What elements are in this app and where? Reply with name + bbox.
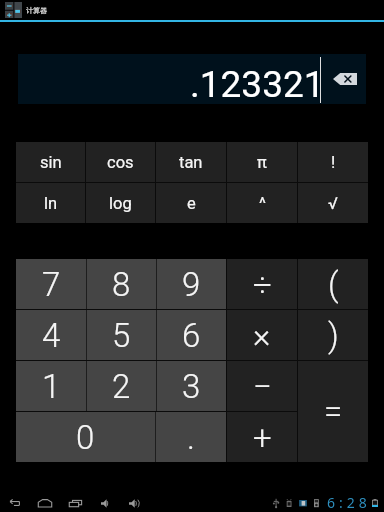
staticText: = — [324, 392, 343, 431]
staticText: √ — [328, 194, 338, 213]
button[interactable]: ^ — [227, 183, 297, 223]
staticText: 2 — [112, 367, 131, 406]
staticText: .123321 — [190, 63, 325, 106]
button[interactable]: − — [227, 361, 297, 411]
button[interactable]: log — [86, 183, 155, 223]
button[interactable]: 0 — [16, 412, 155, 462]
staticText: 1 — [42, 367, 61, 406]
staticText: ( — [328, 265, 339, 304]
button[interactable]: 1 — [16, 361, 86, 411]
staticText: ! — [331, 153, 336, 172]
button[interactable]: × — [227, 310, 297, 360]
button[interactable]: 5 — [87, 310, 156, 360]
staticText: log — [109, 194, 132, 213]
staticText: . — [187, 418, 195, 457]
button[interactable]: Back — [3, 496, 27, 510]
button[interactable]: 3 — [157, 361, 226, 411]
staticText: − — [253, 367, 272, 406]
staticText: ) — [328, 316, 339, 355]
button[interactable]: . — [156, 412, 226, 462]
staticText: ln — [44, 194, 58, 213]
staticText: 3 — [182, 367, 201, 406]
button[interactable]: 2 — [87, 361, 156, 411]
staticText: 7 — [42, 265, 61, 304]
button[interactable]: ln — [16, 183, 85, 223]
button[interactable]: √ — [298, 183, 368, 223]
staticText: 6 — [182, 316, 201, 355]
button[interactable]: Volume up — [122, 496, 146, 510]
button[interactable]: π — [227, 142, 297, 182]
staticText: tan — [179, 153, 203, 172]
button[interactable]: Delete — [324, 54, 366, 104]
staticText: e — [187, 194, 196, 213]
button[interactable]: tan — [156, 142, 226, 182]
staticText: π — [257, 153, 267, 172]
staticText: 8 — [112, 265, 131, 304]
button[interactable]: 6 — [157, 310, 226, 360]
button[interactable]: 4 — [16, 310, 86, 360]
button[interactable]: 9 — [157, 259, 226, 309]
button[interactable]: Recent apps — [63, 496, 87, 510]
button[interactable]: ÷ — [227, 259, 297, 309]
staticText: ^ — [259, 194, 266, 213]
button[interactable]: + — [227, 412, 297, 462]
staticText: 6:28 — [327, 493, 371, 512]
button[interactable]: ( — [298, 259, 368, 309]
button[interactable]: e — [156, 183, 226, 223]
button[interactable]: ) — [298, 310, 368, 360]
button[interactable]: 7 — [16, 259, 86, 309]
button[interactable]: ! — [298, 142, 368, 182]
button[interactable]: = — [298, 361, 368, 462]
button[interactable]: Home — [33, 496, 57, 510]
button[interactable]: Volume down — [93, 496, 117, 510]
staticText: ÷ — [253, 265, 272, 304]
button[interactable]: 8 — [87, 259, 156, 309]
button[interactable]: sin — [16, 142, 85, 182]
staticText: 计算器 — [26, 6, 47, 15]
staticText: 9 — [182, 265, 201, 304]
staticText: × — [253, 316, 271, 355]
button[interactable]: cos — [86, 142, 155, 182]
staticText: sin — [40, 153, 62, 172]
staticText: cos — [107, 153, 134, 172]
staticText: 5 — [112, 316, 131, 355]
staticText: + — [253, 418, 272, 457]
staticText: 0 — [76, 418, 95, 457]
staticText: 4 — [42, 316, 61, 355]
